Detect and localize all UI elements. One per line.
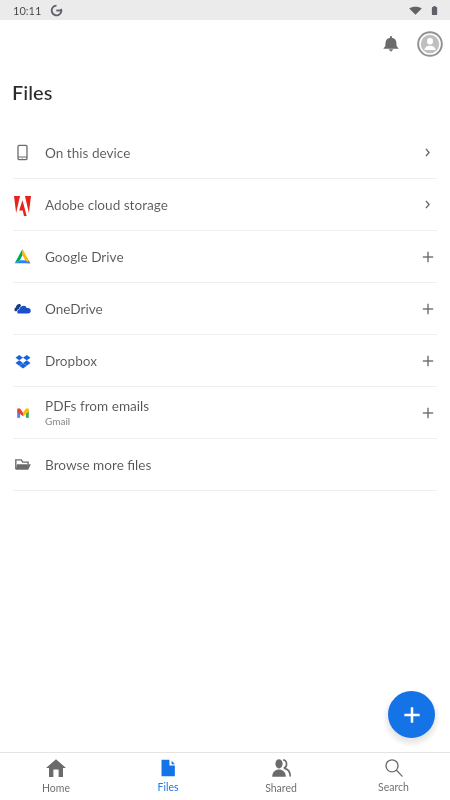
- button[interactable]: Adobe cloud storage: [0, 179, 450, 230]
- button[interactable]: Dropbox: [0, 335, 450, 386]
- staticText: Shared: [265, 782, 297, 795]
- staticText: OneDrive: [45, 301, 103, 317]
- button[interactable]: Shared: [224, 753, 337, 800]
- button[interactable]: Home: [0, 753, 112, 800]
- staticText: On this device: [45, 145, 131, 161]
- staticText: Adobe cloud storage: [45, 197, 168, 213]
- staticText: Files: [157, 781, 179, 794]
- button[interactable]: Browse more files: [0, 439, 450, 490]
- staticText: Home: [42, 782, 70, 795]
- staticText: Gmail: [45, 415, 71, 427]
- staticText: 10:11: [13, 4, 42, 17]
- button[interactable]: Notifications: [373, 26, 408, 61]
- staticText: Search: [378, 781, 409, 794]
- button[interactable]: On this device: [0, 127, 450, 178]
- button[interactable]: Files: [112, 753, 224, 800]
- staticText: Files: [12, 80, 53, 104]
- button[interactable]: Google Drive: [0, 231, 450, 282]
- button[interactable]: Account: [412, 26, 447, 61]
- button[interactable]: Create: [388, 691, 435, 738]
- staticText: Dropbox: [45, 353, 97, 369]
- button[interactable]: Search: [337, 753, 450, 800]
- button[interactable]: PDFs from emails: [0, 387, 450, 438]
- staticText: PDFs from emails: [45, 398, 150, 414]
- staticText: Browse more files: [45, 457, 152, 473]
- button[interactable]: OneDrive: [0, 283, 450, 334]
- staticText: Google Drive: [45, 249, 124, 265]
